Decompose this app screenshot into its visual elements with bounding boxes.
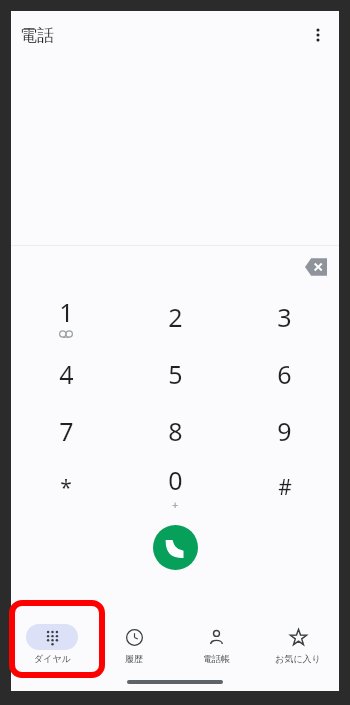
button[interactable]: * — [11, 459, 121, 516]
button[interactable]: Backspace — [299, 250, 333, 284]
button[interactable]: 履歴 — [93, 615, 175, 673]
staticText: 8 — [168, 414, 183, 448]
staticText: 7 — [59, 414, 74, 448]
button[interactable]: More options — [301, 18, 335, 52]
staticText: * — [60, 473, 72, 502]
staticText: 9 — [277, 414, 292, 448]
button[interactable]: お気に入り — [257, 615, 339, 673]
button[interactable]: 電話帳 — [175, 615, 257, 673]
staticText: ダイヤル — [34, 653, 71, 664]
staticText: 6 — [277, 357, 292, 391]
button[interactable]: 7 — [11, 402, 121, 459]
staticText: 電話 — [20, 25, 54, 46]
button[interactable]: 0 — [121, 459, 230, 516]
staticText: 2 — [168, 300, 183, 334]
staticText: + — [172, 497, 179, 512]
staticText: 5 — [168, 357, 183, 391]
button[interactable]: 2 — [121, 288, 230, 345]
staticText: 1 — [59, 295, 74, 329]
staticText: 電話帳 — [203, 653, 230, 664]
staticText: 3 — [277, 300, 292, 334]
button[interactable]: 3 — [230, 288, 339, 345]
staticText: 4 — [59, 357, 74, 391]
button[interactable]: 9 — [230, 402, 339, 459]
button[interactable]: 8 — [121, 402, 230, 459]
button[interactable]: 6 — [230, 345, 339, 402]
button[interactable]: # — [230, 459, 339, 516]
staticText: 履歴 — [125, 653, 143, 664]
staticText: # — [278, 473, 292, 502]
button[interactable]: Call — [153, 525, 198, 570]
button[interactable]: 5 — [121, 345, 230, 402]
button[interactable]: ダイヤル — [11, 615, 93, 673]
button[interactable]: 1 — [11, 288, 121, 345]
button[interactable]: 4 — [11, 345, 121, 402]
staticText: 0 — [168, 463, 183, 497]
staticText: お気に入り — [275, 653, 321, 664]
